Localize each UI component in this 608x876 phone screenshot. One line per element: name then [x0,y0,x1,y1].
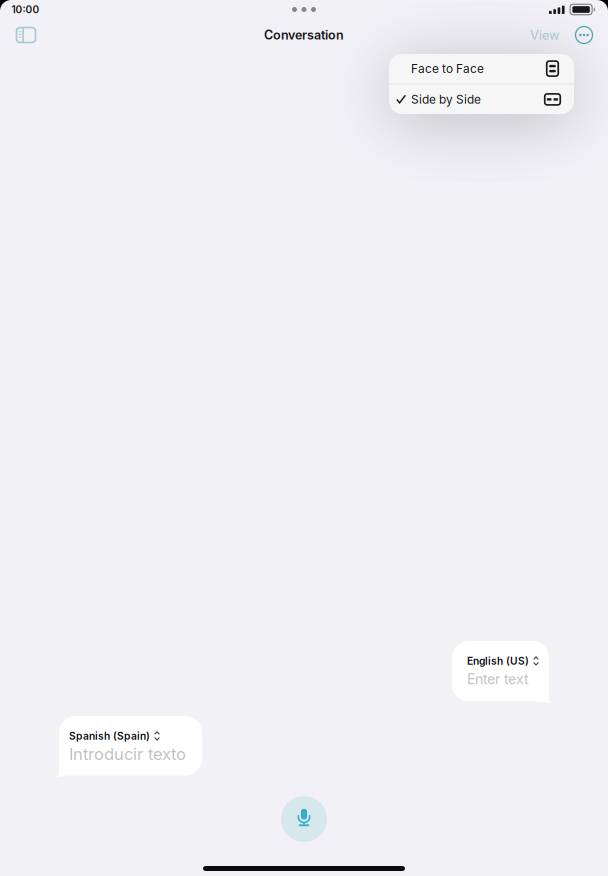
staticText: Introducir texto [69,744,186,764]
button[interactable]: Spanish (Spain) [55,716,202,777]
staticText: Spanish (Spain) [69,730,150,742]
button[interactable]: Show Sidebar [11,20,41,50]
staticText: Face to Face [411,61,484,76]
staticText: 10:00 [11,3,39,16]
staticText: English (US) [467,655,529,667]
button[interactable]: More options [569,20,599,50]
button[interactable]: English (US) [452,641,553,703]
staticText: Conversation [264,27,344,43]
button[interactable]: View [524,20,569,50]
button[interactable]: Side by Side [389,84,574,114]
staticText: View [530,27,559,43]
staticText: Enter text [467,670,529,687]
button[interactable]: Record [281,796,327,842]
staticText: Side by Side [411,92,481,107]
button[interactable]: Face to Face [389,54,574,84]
